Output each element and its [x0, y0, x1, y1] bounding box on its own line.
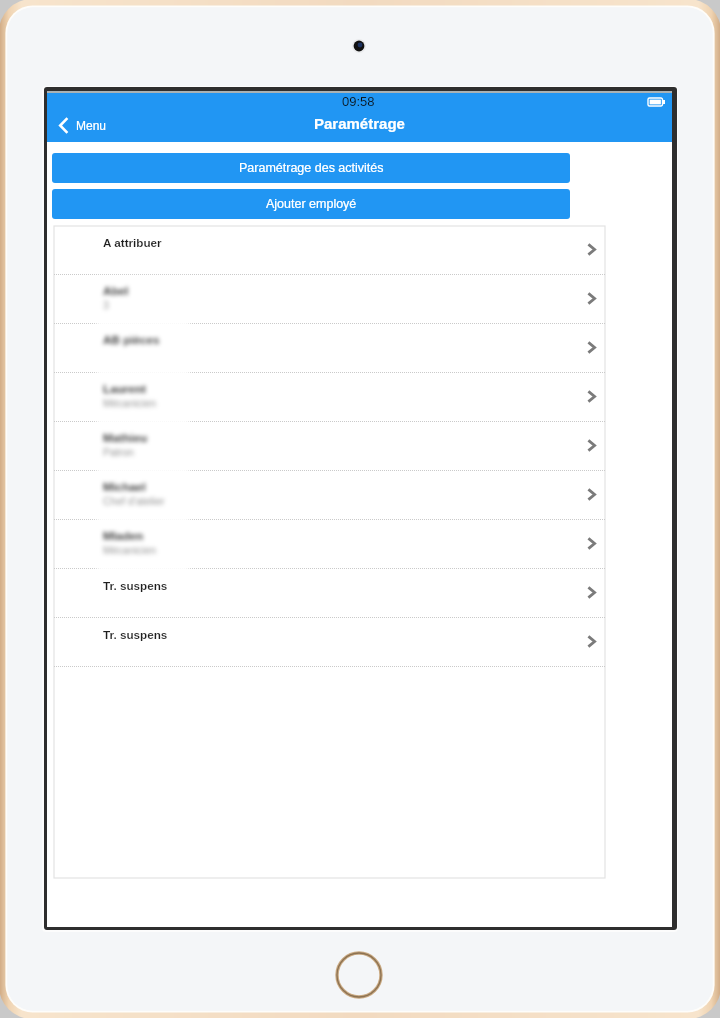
staticText: Menu: [76, 119, 107, 132]
other: Battery: [648, 98, 665, 106]
staticText: Ajouter employé: [266, 197, 357, 211]
staticText: Tr. suspens: [103, 579, 168, 592]
button[interactable]: Mathieu: [54, 422, 605, 471]
other: Open: [587, 292, 596, 305]
staticText: Tr. suspens: [103, 628, 168, 641]
button[interactable]: Tr. suspens: [54, 618, 605, 667]
staticText: Abel: [103, 284, 129, 297]
button[interactable]: Paramétrage des activités: [52, 153, 570, 183]
staticText: Paramétrage: [314, 115, 405, 132]
button[interactable]: A attribuer: [54, 226, 605, 275]
button[interactable]: Abel: [54, 275, 605, 324]
staticText: Paramétrage des activités: [239, 161, 384, 175]
staticText: Patron: [103, 446, 134, 458]
staticText: Mécanicien: [103, 397, 157, 409]
other: Open: [587, 635, 596, 648]
staticText: AB pièces: [103, 333, 160, 346]
button[interactable]: Mladen: [54, 520, 605, 569]
staticText: 3: [103, 299, 109, 311]
staticText: Laurent: [103, 382, 146, 395]
staticText: 09:58: [342, 94, 375, 109]
staticText: A attribuer: [103, 236, 162, 249]
button[interactable]: Ajouter employé: [52, 189, 570, 219]
button[interactable]: Tr. suspens: [54, 569, 605, 618]
other: Open: [587, 586, 596, 599]
other: Open: [587, 537, 596, 550]
button[interactable]: AB pièces: [54, 324, 605, 373]
staticText: Michael: [103, 480, 146, 493]
button[interactable]: Michael: [54, 471, 605, 520]
staticText: Mécanicien: [103, 544, 157, 556]
staticText: Mladen: [103, 529, 144, 542]
button[interactable]: Menu: [59, 117, 107, 134]
other: Open: [587, 488, 596, 501]
other: Open: [587, 243, 596, 256]
staticText: Chef d'atelier: [103, 495, 165, 507]
button[interactable]: Laurent: [54, 373, 605, 422]
other: Open: [587, 390, 596, 403]
other: Open: [587, 341, 596, 354]
other: Open: [587, 439, 596, 452]
staticText: Mathieu: [103, 431, 148, 444]
